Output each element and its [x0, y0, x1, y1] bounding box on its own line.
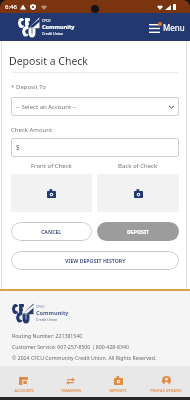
button[interactable]: CANCEL [11, 222, 92, 241]
staticText: ACCOUNTS [14, 388, 34, 393]
staticText: Check Amount [11, 126, 53, 134]
staticText: Deposit To [16, 83, 46, 91]
button[interactable]: Menu [149, 22, 185, 33]
staticText: Menu [163, 22, 185, 33]
staticText: DEPOSIT [127, 228, 149, 235]
staticText: CANCEL [41, 228, 62, 235]
staticText: 6:46 [5, 3, 17, 11]
staticText: * [11, 83, 15, 91]
staticText: Credit Union [42, 31, 64, 36]
staticText: $ [16, 143, 20, 152]
staticText: Community [42, 23, 75, 31]
button[interactable]: PROFILE UPDATES [142, 370, 190, 393]
staticText: Deposit a Check [9, 54, 88, 68]
staticText: Front of Check [31, 162, 72, 170]
button[interactable]: DEPOSIT [97, 222, 179, 241]
staticText: -- Select an Account -- [16, 103, 77, 111]
staticText: Customer Service: 607-257-8500 | 800-428… [12, 343, 129, 350]
button[interactable]: ACCOUNTS [0, 371, 47, 393]
staticText: Routing Number: 221381540 [12, 332, 83, 339]
staticText: CFCU [36, 304, 45, 309]
staticText: TRANSFERS [61, 388, 81, 393]
button[interactable]: Capture Front of Check [11, 174, 92, 212]
staticText: PROFILE UPDATES [150, 388, 182, 393]
staticText: VIEW DEPOSIT HISTORY [65, 257, 126, 264]
staticText: CFCU [42, 18, 51, 23]
button[interactable]: DEPOSITS [94, 370, 142, 393]
button[interactable]: TRANSFERS [47, 371, 94, 393]
staticText: Credit Union [36, 317, 58, 322]
button[interactable]: Capture Back of Check [97, 174, 179, 212]
staticText: DEPOSITS [109, 388, 127, 393]
staticText: © 2024 CFCU Community Credit Union. All … [12, 354, 157, 361]
staticText: Community [36, 309, 69, 317]
button[interactable]: -- Select an Account -- [11, 97, 179, 116]
staticText: Back of Check [118, 162, 158, 170]
button[interactable]: VIEW DEPOSIT HISTORY [11, 251, 179, 270]
button[interactable]: $ [11, 138, 179, 157]
